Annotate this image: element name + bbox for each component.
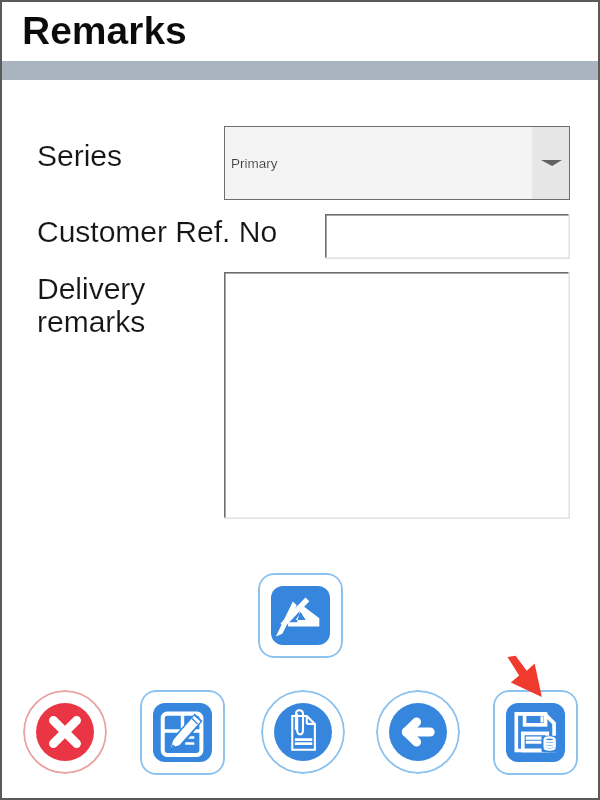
button[interactable]: Edit bbox=[140, 690, 225, 775]
button[interactable] bbox=[224, 272, 570, 519]
staticText: Customer Ref. No bbox=[37, 215, 278, 249]
button[interactable]: Back bbox=[376, 690, 460, 774]
button[interactable]: Signature bbox=[258, 573, 343, 658]
staticText: Remarks bbox=[22, 9, 187, 53]
staticText: Series bbox=[37, 139, 123, 173]
button[interactable]: Attachment bbox=[261, 690, 345, 774]
button[interactable]: Save bbox=[493, 690, 578, 775]
button[interactable] bbox=[325, 214, 570, 259]
button[interactable]: Primary bbox=[224, 126, 570, 200]
staticText: Primary bbox=[231, 156, 278, 171]
button[interactable]: Cancel bbox=[23, 690, 107, 774]
staticText: Delivery remarks bbox=[37, 272, 146, 339]
